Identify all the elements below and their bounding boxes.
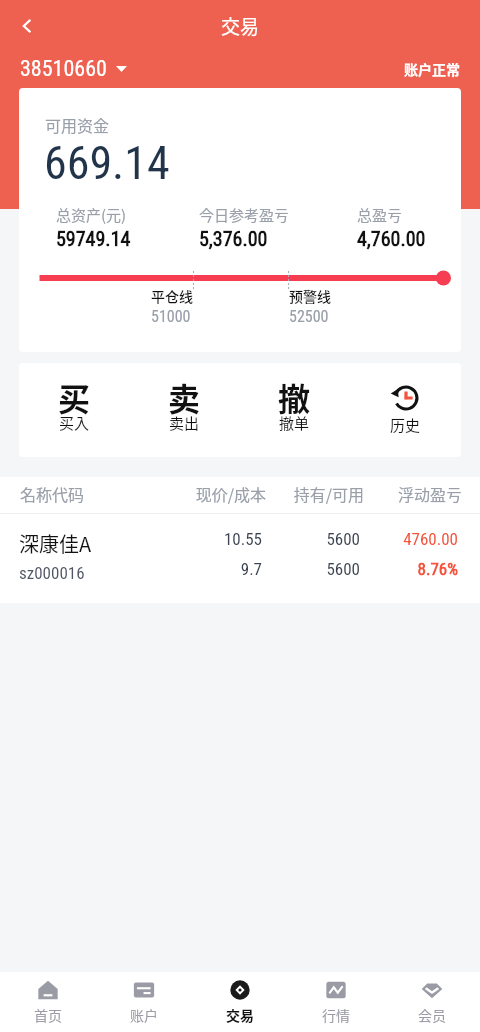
staticText: 8.76% xyxy=(417,559,458,579)
button[interactable]: 撤 xyxy=(239,363,350,457)
staticText: 52500 xyxy=(289,307,329,326)
staticText: 买 xyxy=(58,374,91,420)
staticText: 深康佳A xyxy=(19,529,92,558)
button[interactable]: 行情 xyxy=(288,979,384,1025)
button[interactable]: 卖 xyxy=(129,363,239,457)
staticText: 今日参考盈亏 xyxy=(199,204,290,226)
button[interactable]: 38510660 xyxy=(20,56,127,82)
staticText: 5,376.00 xyxy=(199,227,268,250)
staticText: 账户正常 xyxy=(404,59,460,79)
button[interactable]: 买 xyxy=(19,363,129,457)
staticText: 交易 xyxy=(221,12,260,40)
staticText: 平仓线 xyxy=(151,286,193,306)
staticText: 卖出 xyxy=(169,412,200,434)
staticText: 现价/成本 xyxy=(168,482,266,505)
button[interactable]: 深康佳A xyxy=(0,514,480,603)
staticText: 总资产(元) xyxy=(56,204,127,226)
staticText: 撤 xyxy=(278,374,311,420)
staticText: 撤单 xyxy=(279,412,310,434)
staticText: 59749.14 xyxy=(56,227,131,250)
staticText: sz000016 xyxy=(19,563,85,583)
staticText: 名称代码 xyxy=(20,482,168,505)
staticText: 10.55 xyxy=(223,529,262,549)
staticText: 9.7 xyxy=(240,559,262,579)
staticText: 可用资金 xyxy=(45,113,110,136)
button[interactable]: 历史 xyxy=(350,363,461,457)
staticText: 交易 xyxy=(226,1005,254,1025)
staticText: 5600 xyxy=(326,529,360,549)
staticText: 4,760.00 xyxy=(357,227,426,250)
button[interactable]: 交易 xyxy=(192,979,288,1025)
button[interactable]: 会员 xyxy=(384,979,480,1025)
staticText: 总盈亏 xyxy=(357,204,403,226)
staticText: 持有/可用 xyxy=(266,482,364,505)
staticText: 51000 xyxy=(151,307,191,326)
staticText: 行情 xyxy=(322,1005,350,1025)
staticText: 会员 xyxy=(418,1005,446,1025)
button[interactable]: 账户 xyxy=(96,979,192,1025)
staticText: 买入 xyxy=(59,412,90,434)
staticText: 669.14 xyxy=(44,136,170,190)
staticText: 卖 xyxy=(168,374,201,420)
staticText: 38510660 xyxy=(20,56,107,82)
staticText: 5600 xyxy=(326,559,360,579)
staticText: 历史 xyxy=(390,414,421,436)
staticText: 预警线 xyxy=(289,286,331,306)
staticText: 浮动盈亏 xyxy=(364,482,462,505)
button[interactable]: 首页 xyxy=(0,979,96,1025)
staticText: 4760.00 xyxy=(403,529,458,549)
staticText: 账户 xyxy=(130,1005,158,1025)
button[interactable]: Back xyxy=(0,0,54,52)
staticText: 首页 xyxy=(34,1005,62,1025)
